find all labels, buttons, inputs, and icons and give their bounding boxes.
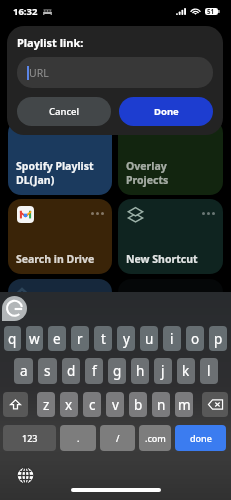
staticText: Overlay Projects xyxy=(126,159,169,187)
staticText: .com xyxy=(145,432,166,444)
button[interactable]: More options xyxy=(8,199,112,274)
button[interactable]: More options xyxy=(202,212,215,215)
staticText: j xyxy=(161,362,165,380)
staticText: r xyxy=(77,330,83,348)
button[interactable]: y xyxy=(117,326,135,351)
button[interactable] xyxy=(118,279,223,319)
button[interactable]: . xyxy=(60,425,96,451)
staticText: URL xyxy=(29,66,49,80)
staticText: w xyxy=(29,330,40,348)
button[interactable]: o xyxy=(186,326,204,351)
button[interactable]: z xyxy=(37,392,55,417)
button[interactable]: Spotify Playlist DL(Jan) xyxy=(8,120,112,195)
staticText: 123 xyxy=(22,432,38,444)
button[interactable]: .com xyxy=(139,425,171,451)
button[interactable]: Shift xyxy=(3,392,28,417)
staticText: z xyxy=(43,396,50,414)
button[interactable]: URL xyxy=(17,57,213,88)
staticText: s xyxy=(44,362,51,380)
staticText: h xyxy=(136,362,145,380)
button[interactable]: / xyxy=(100,425,135,451)
staticText: b xyxy=(134,396,143,414)
button[interactable]: Overlay Projects xyxy=(118,120,223,195)
staticText: n xyxy=(157,396,166,414)
button[interactable]: done xyxy=(175,425,226,451)
button[interactable]: v xyxy=(106,392,124,417)
button[interactable]: r xyxy=(71,326,89,351)
staticText: f xyxy=(92,362,97,380)
button[interactable]: Done xyxy=(119,97,213,126)
button[interactable]: l xyxy=(200,358,218,384)
button[interactable]: d xyxy=(62,358,80,384)
staticText: k xyxy=(182,362,190,380)
staticText: t xyxy=(101,330,106,348)
button[interactable]: a xyxy=(14,358,33,384)
button[interactable]: n xyxy=(152,392,170,417)
staticText: i xyxy=(170,330,174,348)
staticText: . xyxy=(77,432,80,444)
button[interactable]: Gboard xyxy=(2,296,27,321)
staticText: e xyxy=(53,330,61,348)
staticText: m xyxy=(178,396,191,414)
staticText: Done xyxy=(154,105,179,118)
button[interactable]: q xyxy=(4,326,21,351)
button[interactable]: i xyxy=(163,326,181,351)
button[interactable]: Backspace xyxy=(202,392,228,417)
button[interactable]: k xyxy=(177,358,195,384)
button[interactable]: x xyxy=(60,392,78,417)
button[interactable]: Cancel xyxy=(17,97,111,126)
staticText: q xyxy=(8,330,17,348)
staticText: Search in Drive xyxy=(16,252,95,266)
staticText: done xyxy=(190,432,212,444)
button[interactable]: t xyxy=(94,326,112,351)
staticText: l xyxy=(207,362,211,380)
staticText: v xyxy=(112,396,119,414)
button[interactable]: p xyxy=(209,326,227,351)
button[interactable]: c xyxy=(83,392,101,417)
button[interactable]: f xyxy=(85,358,103,384)
staticText: 51 xyxy=(207,7,215,15)
staticText: a xyxy=(20,362,28,380)
button[interactable]: More options xyxy=(118,199,223,274)
staticText: Spotify Playlist DL(Jan) xyxy=(16,159,94,187)
button[interactable]: Switch keyboard xyxy=(17,467,34,484)
staticText: 16:32 xyxy=(13,5,38,18)
staticText: y xyxy=(123,330,130,348)
button[interactable]: 123 xyxy=(3,425,56,451)
staticText: Cancel xyxy=(49,105,80,118)
staticText: p xyxy=(214,330,223,348)
staticText: c xyxy=(89,396,96,414)
button[interactable]: w xyxy=(26,326,43,351)
staticText: New Shortcut xyxy=(126,252,198,266)
button[interactable]: b xyxy=(129,392,147,417)
staticText: o xyxy=(191,330,200,348)
staticText: x xyxy=(65,396,73,414)
staticText: u xyxy=(145,330,154,348)
button[interactable]: h xyxy=(131,358,149,384)
button[interactable]: j xyxy=(154,358,172,384)
button[interactable]: More options xyxy=(91,212,104,215)
button[interactable]: e xyxy=(48,326,66,351)
staticText: Playlist link: xyxy=(17,35,84,50)
staticText: d xyxy=(67,362,76,380)
button[interactable]: g xyxy=(108,358,126,384)
button[interactable]: m xyxy=(175,392,193,417)
staticText: / xyxy=(116,432,120,444)
button[interactable] xyxy=(8,279,112,319)
button[interactable]: s xyxy=(38,358,57,384)
staticText: g xyxy=(113,362,122,380)
button[interactable]: u xyxy=(140,326,158,351)
